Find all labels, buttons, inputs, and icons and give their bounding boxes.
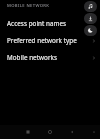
- staticText: Preferred network type: [7, 36, 77, 45]
- button[interactable]: Back: [66, 125, 78, 139]
- staticText: Mobile networks: [7, 53, 58, 62]
- button[interactable]: Dark mode: [84, 25, 97, 36]
- button[interactable]: Music: [84, 1, 97, 12]
- button[interactable]: Access point names: [0, 15, 100, 32]
- button[interactable]: Preferred network type: [0, 32, 100, 49]
- button[interactable]: Mobile networks: [0, 49, 100, 66]
- button[interactable]: Recents: [22, 125, 34, 139]
- button[interactable]: Home: [44, 125, 56, 139]
- staticText: Access point names: [7, 19, 67, 28]
- button[interactable]: Download: [84, 13, 97, 24]
- button[interactable]: More: [88, 125, 100, 139]
- staticText: MOBILE NETWORK: [7, 3, 50, 9]
